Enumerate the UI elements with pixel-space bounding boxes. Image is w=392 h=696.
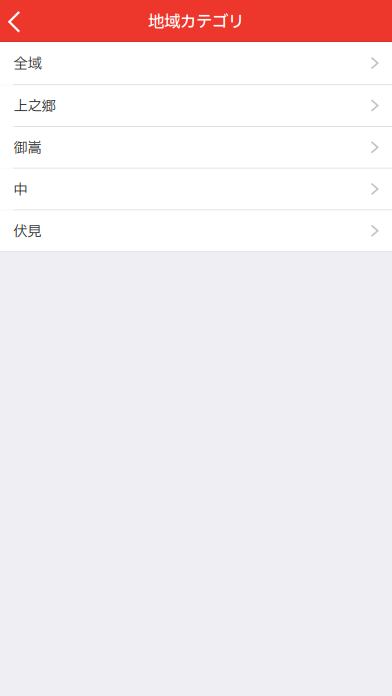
button[interactable]: 中	[0, 169, 392, 210]
button[interactable]: 上之郷	[0, 85, 392, 127]
button[interactable]: 伏見	[0, 210, 392, 252]
button[interactable]: Back	[0, 0, 30, 42]
button[interactable]: 全域	[0, 42, 392, 85]
staticText: 全域	[13, 53, 41, 75]
staticText: 地域カテゴリ	[148, 10, 244, 35]
staticText: 御嵩	[13, 138, 41, 159]
staticText: 中	[13, 179, 27, 201]
button[interactable]: 御嵩	[0, 127, 392, 169]
staticText: 伏見	[13, 221, 41, 242]
staticText: 上之郷	[13, 96, 55, 117]
